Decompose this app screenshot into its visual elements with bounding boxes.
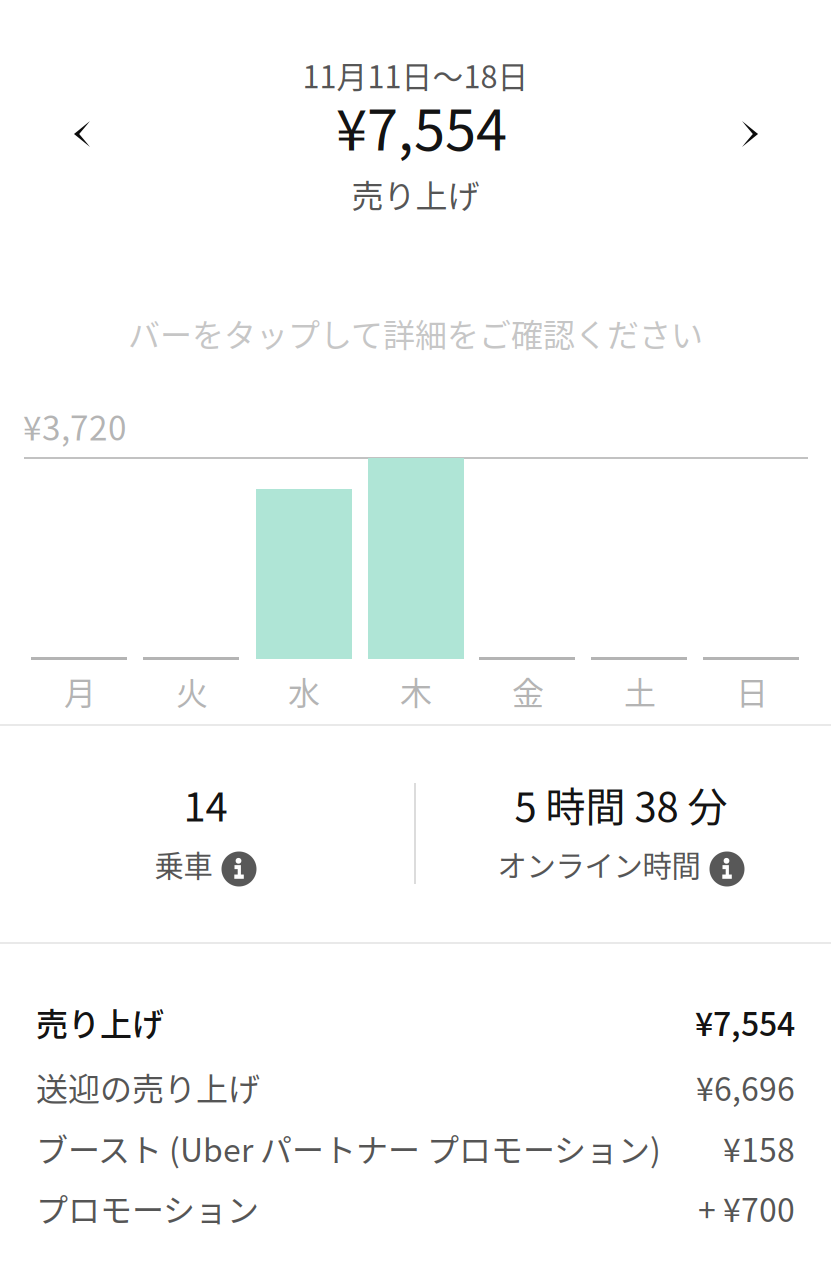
staticText: ¥7,554: [336, 85, 507, 167]
staticText: プロモーション: [36, 1185, 259, 1231]
button[interactable]: 乗車: [154, 846, 256, 882]
staticText: 14: [183, 775, 227, 833]
staticText: 月: [64, 668, 96, 714]
staticText: ¥3,720: [23, 402, 127, 450]
staticText: ¥6,696: [696, 1064, 795, 1110]
staticText: 火: [176, 668, 208, 714]
button[interactable]: 前の週: [46, 98, 118, 170]
staticText: 送迎の売り上げ: [36, 1064, 260, 1110]
staticText: 土: [624, 668, 656, 714]
staticText: 日: [736, 668, 768, 714]
staticText: 11月11日〜18日: [302, 53, 528, 97]
staticText: 売り上げ: [36, 999, 164, 1045]
button[interactable]: オンライン時間: [497, 846, 744, 882]
staticText: 売り上げ: [351, 171, 479, 217]
staticText: 木: [400, 668, 432, 714]
staticText: 乗車: [154, 843, 212, 885]
staticText: ¥158: [723, 1125, 795, 1171]
staticText: + ¥700: [698, 1185, 795, 1231]
staticText: 5 時間 38 分: [514, 775, 727, 833]
button[interactable]: 次の週: [714, 98, 786, 170]
staticText: ブースト (Uber パートナー プロモーション): [36, 1125, 661, 1171]
staticText: バーをタップして詳細をご確認ください: [128, 310, 703, 356]
staticText: 水: [288, 668, 320, 714]
staticText: オンライン時間: [497, 843, 700, 885]
staticText: 金: [512, 668, 544, 714]
staticText: ¥7,554: [695, 999, 795, 1045]
